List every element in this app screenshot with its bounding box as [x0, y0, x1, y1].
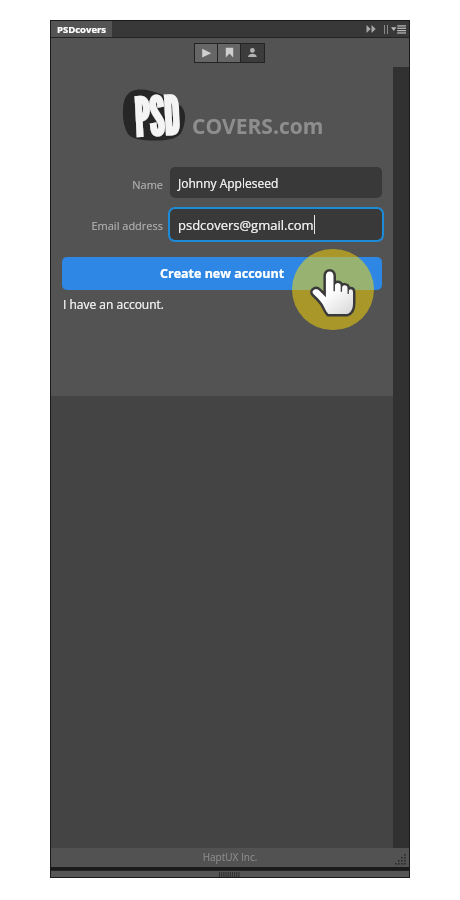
button[interactable]: I have an account.: [63, 296, 165, 312]
staticText: PSD: [132, 84, 181, 142]
staticText: Name: [63, 177, 163, 192]
staticText: Johnny Appleseed: [178, 175, 279, 191]
staticText: Email address: [63, 218, 163, 233]
staticText: PSDcovers: [57, 23, 107, 36]
button[interactable]: Account: [241, 44, 264, 62]
staticText: Create new account: [160, 265, 285, 282]
button[interactable]: Play: [195, 44, 217, 62]
button[interactable]: Panel menu: [391, 25, 406, 33]
button[interactable]: PSDcovers: [51, 21, 112, 38]
staticText: COVERS.com: [192, 112, 324, 141]
staticText: psdcovers@gmail.com: [178, 216, 314, 234]
button[interactable]: psdcovers@gmail.com: [170, 209, 382, 240]
button[interactable]: Expand panel: [366, 25, 379, 33]
button[interactable]: Bookmark: [218, 44, 240, 62]
button[interactable]: Create new account: [62, 257, 382, 290]
button[interactable]: Johnny Appleseed: [170, 167, 382, 198]
staticText: HaptUX Inc.: [51, 850, 409, 864]
